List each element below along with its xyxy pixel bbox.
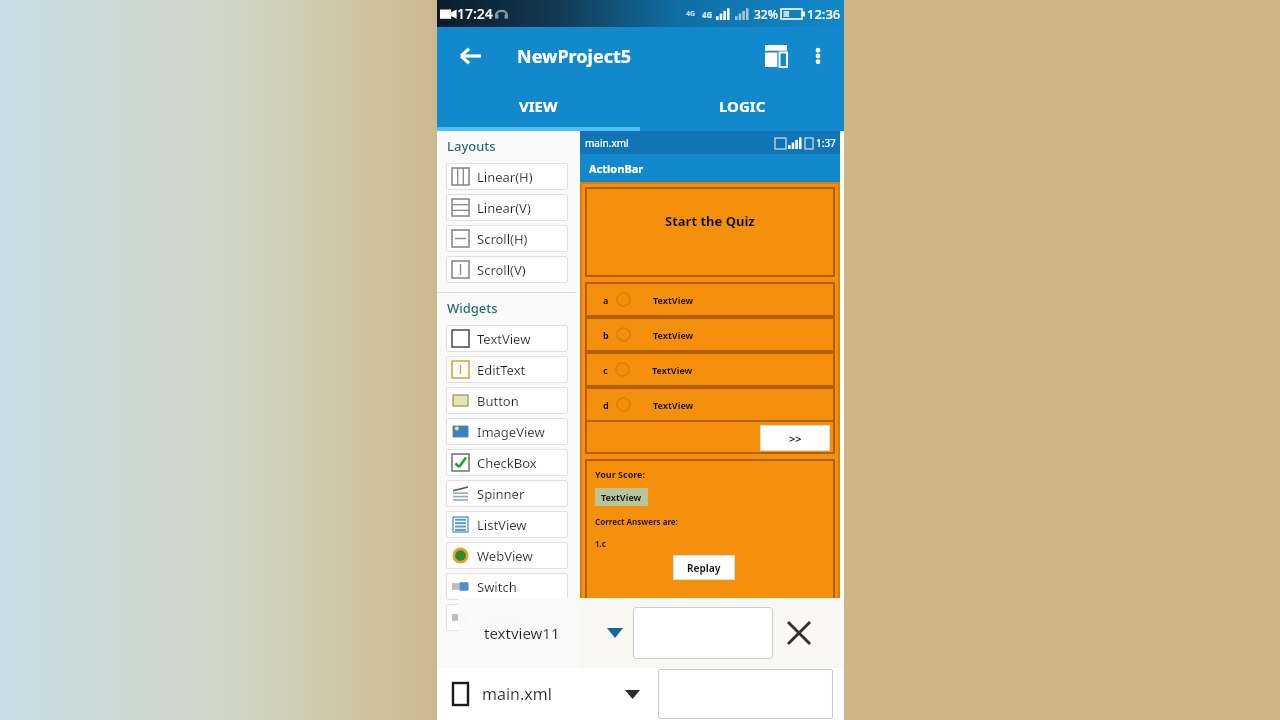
button[interactable] [633,607,773,659]
button[interactable]: a [585,282,835,317]
staticText: TextView [477,330,531,348]
staticText: CheckBox [477,454,537,472]
button[interactable]: Layout [754,34,798,78]
staticText: 1:37 [816,136,836,150]
staticText: c [603,364,608,376]
staticText: ListView [477,516,527,534]
staticText: Widgets [447,299,498,317]
button[interactable]: Replay [673,555,735,580]
button[interactable]: WebView [446,542,568,569]
staticText: Your Score: [595,468,645,480]
staticText: d [603,399,609,411]
staticText: Correct Answers are: [595,516,678,527]
button[interactable]: Button [446,387,568,414]
staticText: WebView [477,547,533,565]
button[interactable]: b [585,317,835,352]
staticText: a [603,294,609,306]
staticText: EditText [477,361,526,379]
staticText: Scroll(V) [477,261,526,279]
staticText: 1.c [595,538,606,549]
button[interactable]: c [585,352,835,387]
staticText: Switch [477,578,517,596]
staticText: 4G [702,9,713,20]
staticText: Start the Quiz [665,212,755,230]
staticText: Linear(H) [477,168,533,186]
staticText: VIEW [519,96,558,116]
button[interactable]: Linear(V) [446,194,568,221]
staticText: 32% [754,6,778,22]
staticText: Button [477,392,519,410]
button[interactable]: Spinner [446,480,568,507]
staticText: 17:24 [457,4,493,23]
button[interactable] [658,669,833,719]
button[interactable]: d [585,387,835,422]
staticText: main.xml [482,683,552,705]
staticText: LOGIC [719,96,766,116]
button[interactable]: SeekBar [446,604,568,631]
button[interactable]: Switch [446,573,568,600]
staticText: TextView [653,294,694,306]
button[interactable]: Scroll(V) [446,256,568,283]
staticText: textview11 [484,623,560,643]
button[interactable]: Scroll(H) [446,225,568,252]
staticText: Linear(V) [477,199,531,217]
staticText: ActionBar [589,161,644,176]
button[interactable]: Linear(H) [446,163,568,190]
button[interactable]: More options [798,36,838,76]
staticText: 12:36 [807,5,841,23]
staticText: 4G [686,9,696,19]
button[interactable]: ListView [446,511,568,538]
staticText: TextView [652,364,693,376]
button[interactable]: VIEW [437,85,640,127]
button[interactable]: >> [760,425,830,451]
staticText: TextView [601,491,642,503]
button[interactable]: Close [773,607,825,659]
button[interactable]: ImageView [446,418,568,445]
button[interactable]: main.xml [453,668,658,720]
staticText: >> [789,431,802,446]
button[interactable]: Back [449,34,493,78]
staticText: TextView [653,329,694,341]
button[interactable]: CheckBox [446,449,568,476]
button[interactable]: textview11 [458,598,633,668]
staticText: b [603,329,609,341]
staticText: Replay [687,561,721,575]
button[interactable]: EditText [446,356,568,383]
button[interactable]: LOGIC [640,85,844,127]
staticText: TextView [653,399,694,411]
staticText: NewProject5 [517,44,632,69]
staticText: main.xml [585,136,629,150]
staticText: Layouts [447,137,496,155]
staticText: ImageView [477,423,545,441]
staticText: Scroll(H) [477,230,528,248]
button[interactable]: TextView [446,325,568,352]
staticText: Spinner [477,485,525,503]
